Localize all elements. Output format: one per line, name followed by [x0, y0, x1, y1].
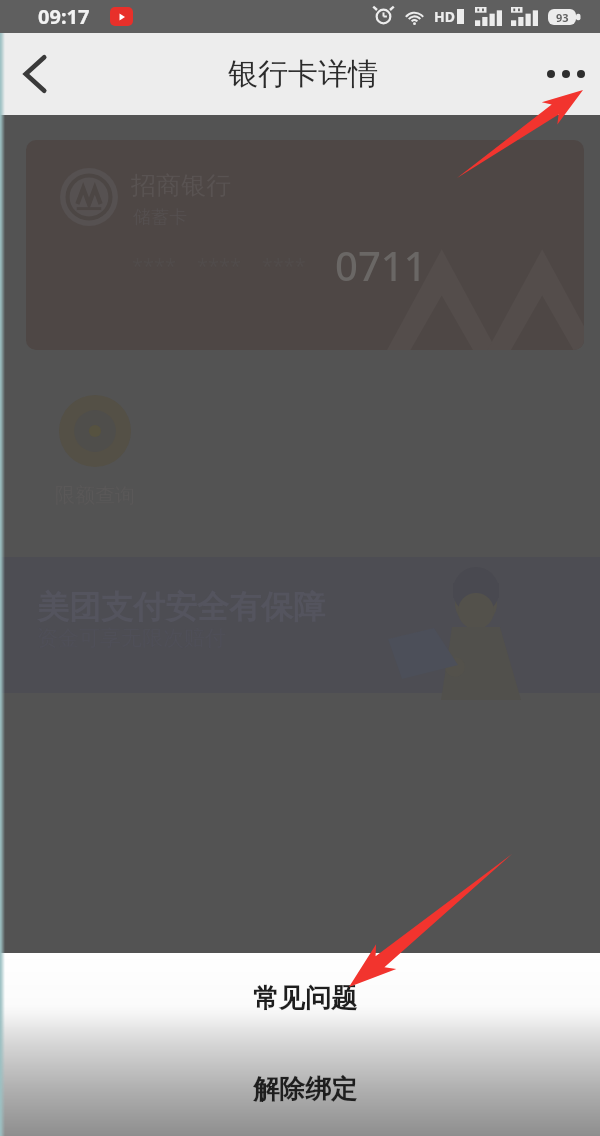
button[interactable]: 招商银行: [26, 140, 584, 350]
staticText: 0711: [335, 238, 427, 292]
button[interactable]: More options: [532, 33, 600, 115]
button[interactable]: 常见问题: [0, 953, 600, 1044]
staticText: 招商银行: [131, 170, 231, 201]
staticText: 09:17: [38, 3, 90, 30]
button[interactable]: 解除绑定: [0, 1044, 600, 1135]
staticText: HD: [434, 7, 455, 26]
staticText: 常见问题: [253, 982, 357, 1015]
button[interactable]: 限额查询: [50, 395, 140, 508]
button[interactable]: 美团支付安全有保障: [0, 557, 600, 693]
staticText: 储蓄卡: [133, 206, 187, 229]
button[interactable]: Back: [0, 33, 68, 115]
staticText: 解除绑定: [253, 1073, 357, 1106]
staticText: 美团支付安全有保障: [37, 587, 325, 627]
staticText: 银行卡详情: [228, 55, 378, 93]
staticText: 93: [556, 10, 569, 25]
